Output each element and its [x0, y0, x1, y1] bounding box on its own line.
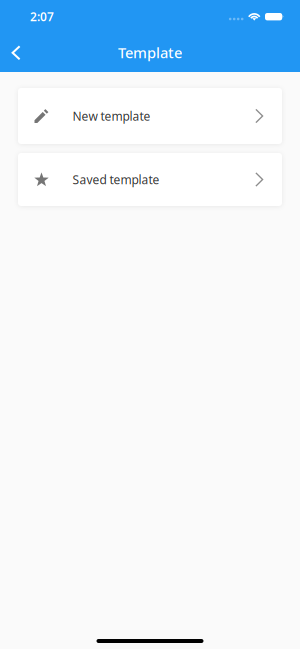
button[interactable]: Saved template [18, 153, 282, 206]
staticText: Template [118, 43, 182, 62]
button[interactable]: Back [0, 33, 32, 72]
staticText: Saved template [72, 171, 159, 187]
staticText: New template [72, 108, 150, 124]
staticText: 2:07 [30, 8, 54, 24]
button[interactable]: New template [18, 88, 282, 144]
